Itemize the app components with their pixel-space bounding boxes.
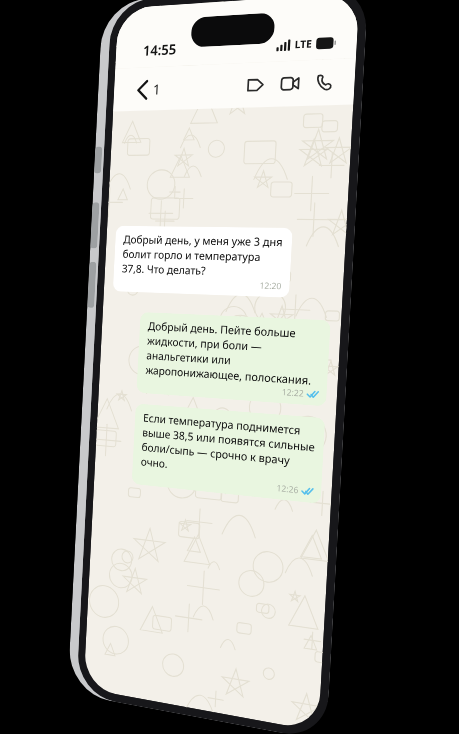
staticText: 14:55 — [143, 39, 177, 60]
button[interactable]: Добрый день. Пейте больше жидкости, при … — [136, 312, 331, 406]
staticText: Если температура поднимется выше 38,5 ил… — [140, 410, 317, 485]
staticText: 1 — [152, 79, 162, 98]
staticText: LTE — [294, 36, 312, 51]
button[interactable]: Добрый день, у меня уже 3 дня болит горл… — [113, 226, 293, 298]
staticText: Добрый день. Пейте больше жидкости, при … — [145, 318, 322, 388]
staticText: 12:26 — [276, 482, 299, 496]
staticText: Добрый день, у меня уже 3 дня болит горл… — [122, 232, 284, 280]
button[interactable]: Back — [131, 73, 168, 105]
button[interactable]: Video call — [275, 71, 304, 96]
button[interactable]: Label — [241, 71, 269, 99]
button[interactable]: Voice call — [310, 68, 339, 96]
staticText: 12:22 — [281, 386, 304, 400]
button[interactable]: Если температура поднимется выше 38,5 ил… — [131, 403, 325, 504]
staticText: 12:20 — [259, 279, 282, 292]
